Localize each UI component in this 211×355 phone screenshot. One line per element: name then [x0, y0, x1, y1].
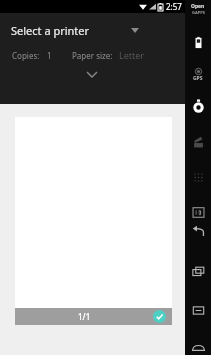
staticText: Letter [119, 49, 145, 61]
button[interactable]: Page selected [153, 310, 166, 323]
staticText: Open [191, 3, 205, 10]
button[interactable]: Signal meter [186, 132, 210, 152]
button[interactable]: Recents [186, 261, 210, 281]
button[interactable]: Battery [186, 32, 210, 52]
staticText: 1 [47, 50, 52, 61]
staticText: 2:57 [166, 1, 182, 12]
button[interactable]: Menu [186, 300, 210, 320]
staticText: GPS [193, 75, 203, 82]
staticText: Select a printer [11, 23, 90, 38]
staticText: Paper size: [72, 50, 113, 61]
staticText: 1/1 [78, 311, 91, 322]
button[interactable]: Home [186, 339, 210, 355]
button[interactable]: GPS [186, 66, 210, 84]
button[interactable]: Camera [186, 97, 210, 117]
button[interactable]: Paper size: [72, 49, 145, 61]
button[interactable]: Expand print options [81, 67, 103, 81]
staticText: Copies: [12, 50, 40, 61]
button[interactable]: Select a printer [0, 18, 185, 42]
button[interactable]: Copies: [12, 50, 52, 61]
staticText: GAPPS [192, 10, 205, 15]
button[interactable]: Device ID [186, 202, 210, 222]
button[interactable]: Grid [186, 167, 210, 187]
button[interactable]: Back [186, 222, 210, 242]
